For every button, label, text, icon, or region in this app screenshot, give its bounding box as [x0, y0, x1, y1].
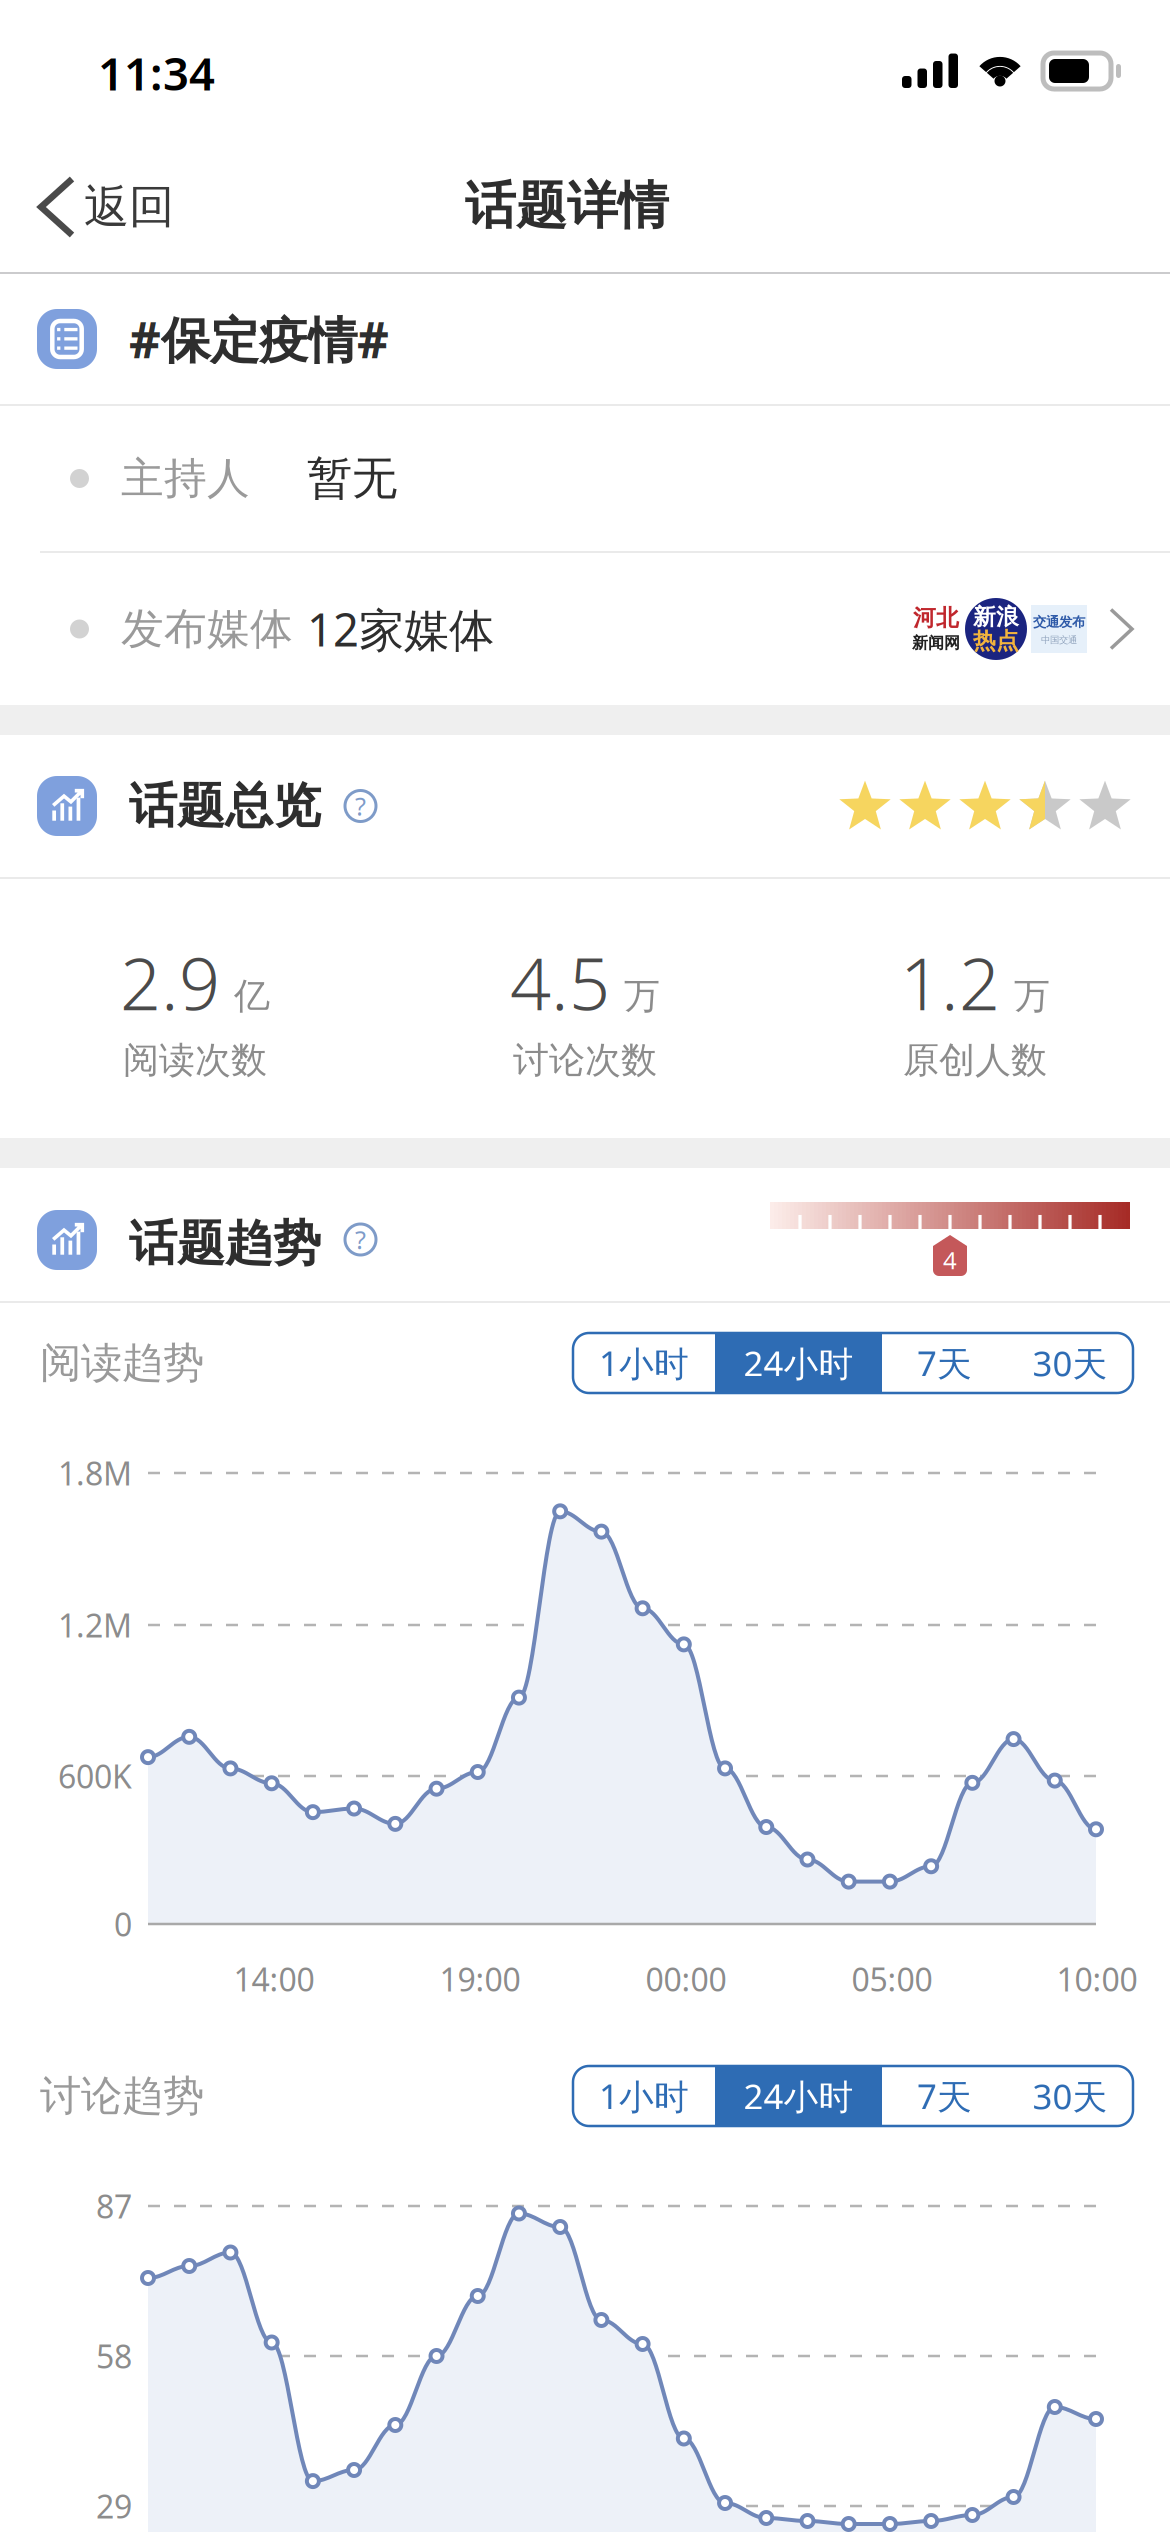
- staticText: 12家媒体: [307, 599, 494, 659]
- button[interactable]: 30天: [1007, 1333, 1133, 1393]
- staticText: 11:34: [98, 43, 215, 103]
- staticText: 600K: [58, 1755, 132, 1797]
- staticText: 原创人数: [903, 1038, 1047, 1082]
- staticText: 14:00: [233, 1958, 314, 2000]
- staticText: 1小时: [599, 2073, 689, 2119]
- staticText: 05:00: [851, 1958, 932, 2000]
- staticText: 87: [96, 2185, 132, 2227]
- staticText: 10:00: [1056, 1958, 1137, 2000]
- staticText: 讨论次数: [513, 1038, 657, 1082]
- button[interactable]: 1小时: [573, 2066, 715, 2126]
- staticText: 19:00: [439, 1958, 520, 2000]
- button[interactable]: 30天: [1007, 2066, 1133, 2126]
- staticText: 万: [624, 974, 660, 1018]
- staticText: 话题趋势: [129, 1214, 321, 1273]
- staticText: 万: [1014, 974, 1050, 1018]
- staticText: 7天: [917, 2073, 972, 2119]
- staticText: 新闻网: [912, 633, 960, 653]
- staticText: 新浪: [973, 603, 1019, 631]
- staticText: 4: [943, 1244, 957, 1276]
- button[interactable]: 1小时: [573, 1333, 715, 1393]
- staticText: 阅读次数: [123, 1038, 267, 1082]
- staticText: 7天: [917, 1340, 972, 1386]
- staticText: 暂无: [307, 451, 397, 506]
- staticText: 1.8M: [58, 1452, 132, 1494]
- staticText: 讨论趋势: [40, 2071, 204, 2121]
- staticText: 00:00: [645, 1958, 726, 2000]
- button[interactable]: 返回: [0, 145, 198, 257]
- staticText: 话题详情: [465, 175, 669, 237]
- staticText: 58: [96, 2335, 132, 2377]
- button[interactable]: 7天: [882, 2066, 1007, 2126]
- staticText: 24小时: [743, 2073, 853, 2119]
- staticText: 1小时: [599, 1340, 689, 1386]
- staticText: 2.9: [120, 935, 220, 1030]
- staticText: ?: [355, 789, 366, 823]
- staticText: 话题总览: [129, 776, 321, 835]
- button[interactable]: 7天: [882, 1333, 1007, 1393]
- staticText: 交通发布: [1033, 614, 1085, 630]
- staticText: 主持人: [121, 452, 250, 505]
- staticText: 1.2M: [58, 1604, 132, 1646]
- staticText: ?: [355, 1223, 366, 1256]
- staticText: 发布媒体: [121, 603, 293, 655]
- staticText: 29: [96, 2485, 132, 2527]
- button[interactable]: 24小时: [715, 1333, 882, 1393]
- staticText: 30天: [1032, 1340, 1107, 1386]
- staticText: 24小时: [743, 1340, 853, 1386]
- staticText: 亿: [234, 974, 270, 1018]
- staticText: 河北: [913, 604, 959, 632]
- staticText: #保定疫情#: [129, 306, 389, 372]
- staticText: 阅读趋势: [40, 1338, 204, 1388]
- staticText: 30天: [1032, 2073, 1107, 2119]
- staticText: 0: [114, 1903, 132, 1945]
- staticText: 返回: [84, 179, 174, 235]
- staticText: 1.2: [900, 935, 1000, 1030]
- button[interactable]: 发布媒体: [0, 553, 1170, 705]
- staticText: 4.5: [510, 935, 610, 1030]
- staticText: 中国交通: [1041, 634, 1077, 646]
- staticText: 热点: [973, 627, 1019, 655]
- button[interactable]: 24小时: [715, 2066, 882, 2126]
